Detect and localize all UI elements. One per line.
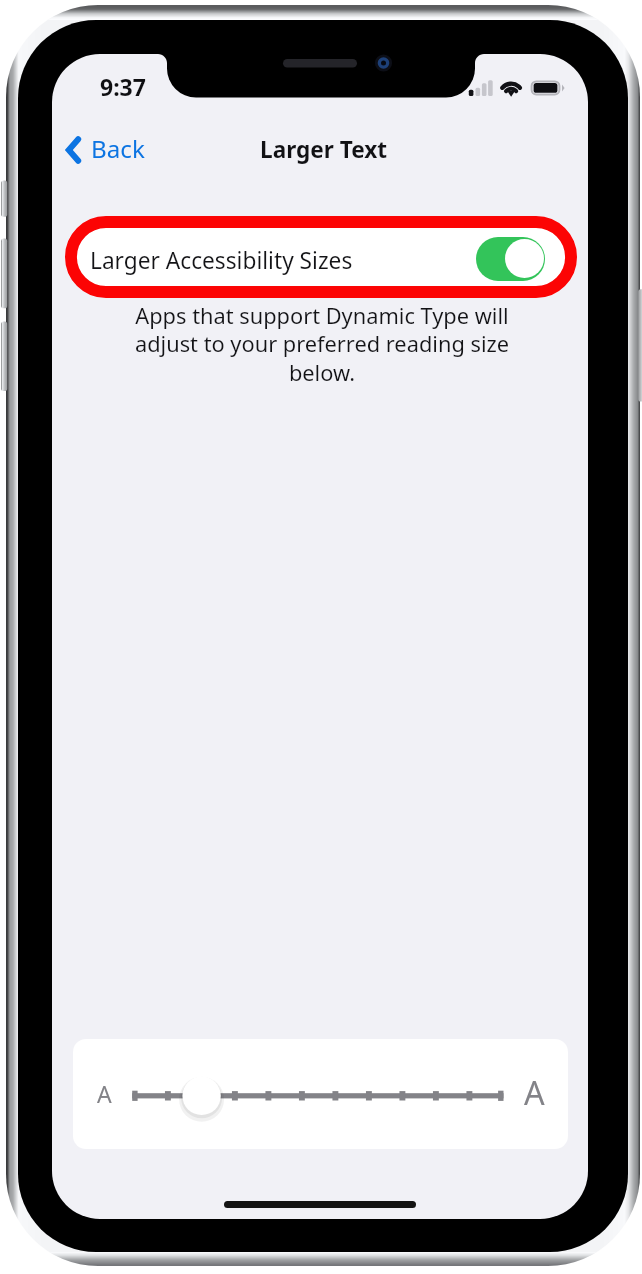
button[interactable]: A [73,1039,568,1149]
staticText: Larger Text [260,134,388,165]
button[interactable]: Larger Accessibility Sizes [65,216,577,298]
button[interactable]: Back [61,128,145,168]
button[interactable]: Larger Accessibility Sizes switch, on [476,237,545,281]
staticText: 9:37 [100,71,146,102]
staticText: Apps that support Dynamic Type will adju… [130,301,514,388]
staticText: Back [91,132,145,165]
staticText: A [524,1070,545,1114]
staticText: A [97,1078,112,1109]
staticText: Larger Accessibility Sizes [90,245,353,276]
